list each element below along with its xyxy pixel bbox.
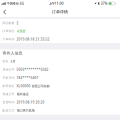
staticText: 快递公司 [3, 92, 15, 96]
staticText: 下单时间 [3, 37, 15, 41]
staticText: 手机号码 [3, 76, 15, 80]
staticText: 2 [17, 21, 19, 25]
staticText: 2019-08-19 20:20 [17, 100, 45, 104]
staticText: 身份证号 [3, 68, 15, 71]
staticText: 商品数量 [3, 21, 15, 25]
staticText: 中国移动 [6, 2, 19, 5]
staticText: 订单详情 [52, 9, 68, 14]
button[interactable]: 发货时间 [0, 98, 120, 106]
staticText: 发货时间 [3, 100, 15, 104]
staticText: XL00000 邮宽公司名称 [17, 84, 50, 88]
staticText: 配送方式 [3, 109, 15, 112]
button[interactable]: 身份证号 [0, 65, 120, 74]
staticText: 37% [101, 1, 108, 6]
button[interactable]: 邮寄地址 [0, 82, 120, 90]
staticText: 2019-08-18 21:33:52 [17, 37, 50, 41]
staticText: 寄件人信息 [3, 51, 23, 56]
staticText: 5003********5042 [17, 67, 49, 72]
button[interactable]: 商品数量 [0, 19, 120, 27]
staticText: x月 [11, 59, 16, 63]
staticText: 上午11:00 [48, 1, 63, 6]
staticText: 邮寄地址 [3, 84, 15, 88]
button[interactable]: 下单时间 [0, 35, 120, 43]
staticText: 未预置 [17, 29, 26, 33]
staticText: 4G [19, 1, 24, 5]
staticText: 海口美兰机场 [17, 108, 35, 112]
staticText: 口罩状态 [3, 29, 15, 33]
staticText: 顺丰速运 [17, 92, 29, 96]
button[interactable]: 快递公司 [0, 90, 120, 98]
staticText: 姓名 [3, 59, 9, 63]
button[interactable]: Back [0, 7, 9, 17]
button[interactable]: 姓名 [0, 57, 120, 65]
staticText: 182****5407 [17, 75, 39, 80]
button[interactable]: 配送方式 [0, 106, 120, 115]
button[interactable]: 手机号码 [0, 74, 120, 82]
button[interactable]: 口罩状态 [0, 27, 120, 35]
